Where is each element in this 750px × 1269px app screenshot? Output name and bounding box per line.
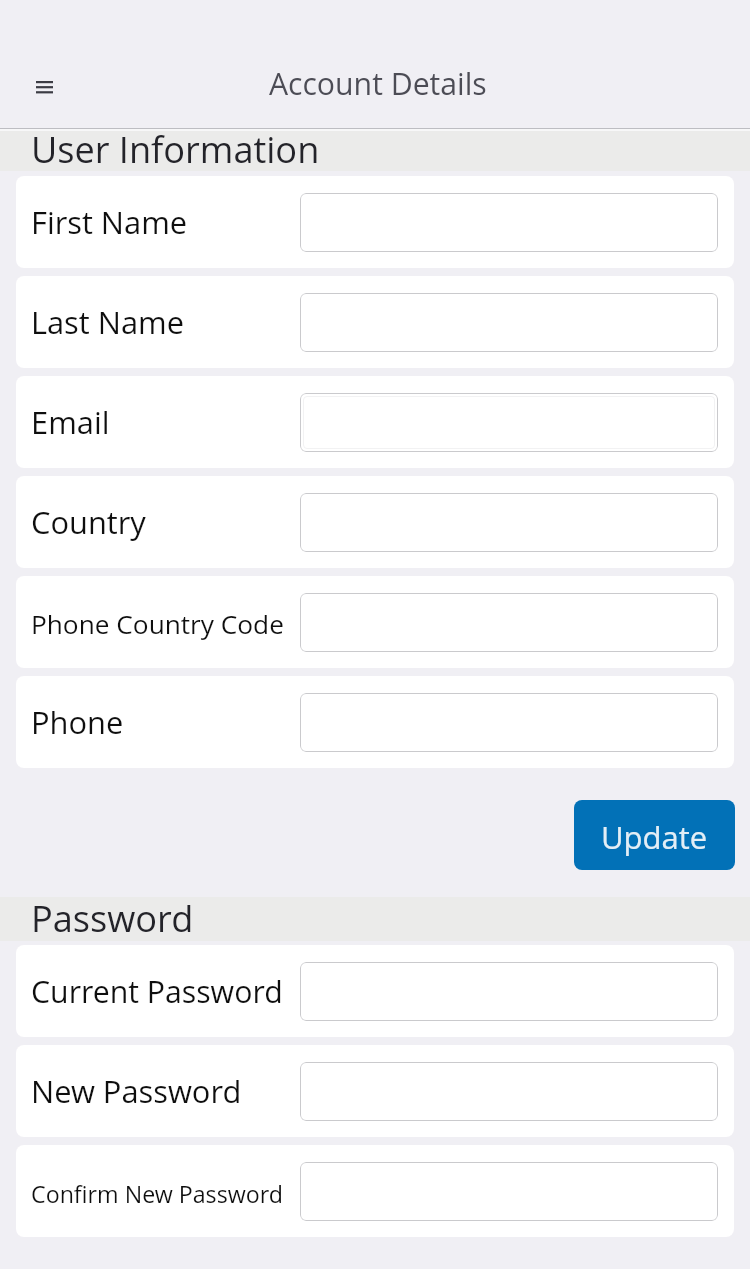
staticText: Phone Country Code <box>31 606 284 642</box>
button[interactable]: Update <box>574 800 735 870</box>
staticText: New Password <box>31 1070 242 1112</box>
button[interactable] <box>300 593 718 652</box>
staticText: First Name <box>31 201 188 243</box>
staticText: Last Name <box>31 301 184 343</box>
button[interactable]: Last Name <box>16 276 734 368</box>
button[interactable] <box>300 193 718 252</box>
staticText: Phone <box>31 701 124 743</box>
button[interactable] <box>300 293 718 352</box>
button[interactable]: Current Password <box>16 945 734 1037</box>
button[interactable] <box>300 393 718 452</box>
button[interactable]: New Password <box>16 1045 734 1137</box>
staticText: Email <box>31 401 110 443</box>
staticText: User Information <box>31 124 320 167</box>
staticText: Current Password <box>31 971 283 1012</box>
button[interactable] <box>300 1162 718 1221</box>
staticText: Password <box>31 893 194 937</box>
button[interactable]: Country <box>16 476 734 568</box>
staticText: Confirm New Password <box>31 1178 283 1210</box>
staticText: Update <box>601 816 708 858</box>
button[interactable] <box>300 693 718 752</box>
staticText: Country <box>31 501 146 543</box>
staticText: Account Details <box>269 63 487 104</box>
button[interactable]: Email <box>16 376 734 468</box>
button[interactable]: Phone Country Code <box>16 576 734 668</box>
button[interactable] <box>300 493 718 552</box>
button[interactable] <box>300 962 718 1021</box>
button[interactable]: Phone <box>16 676 734 768</box>
button[interactable] <box>300 1062 718 1121</box>
button[interactable]: Confirm New Password <box>16 1145 734 1237</box>
button[interactable]: Open navigation menu <box>16 59 72 115</box>
button[interactable]: First Name <box>16 176 734 268</box>
